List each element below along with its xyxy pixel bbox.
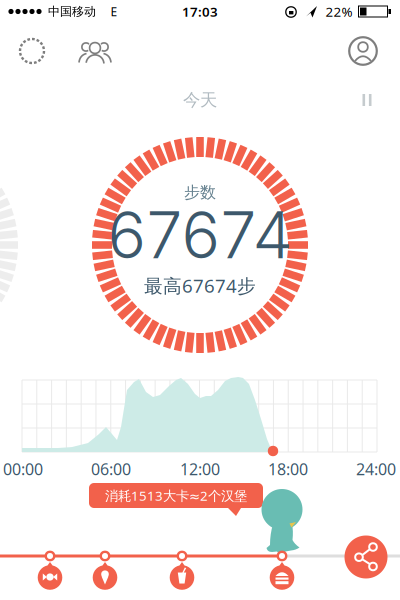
staticText: 消耗1513大卡≈2个汉堡 (105, 487, 247, 504)
button[interactable]: 糖果 (37, 562, 63, 589)
staticText: 00:00 (3, 458, 43, 480)
staticText: 06:00 (91, 458, 131, 480)
button[interactable]: 我的 (348, 36, 378, 66)
staticText: 步数 (184, 183, 216, 202)
button[interactable]: 冰淇淋 (92, 562, 118, 589)
staticText: 最高67674步 (144, 273, 256, 298)
staticText: 24:00 (356, 458, 396, 480)
staticText: 22% (325, 3, 352, 20)
staticText: 中国移动 (48, 4, 96, 19)
button[interactable]: 暂停 (362, 94, 371, 106)
staticText: E (110, 3, 117, 19)
button[interactable]: 饮料 (169, 562, 195, 589)
button[interactable]: 汉堡 (269, 562, 295, 589)
button[interactable]: 分享 (344, 535, 387, 578)
staticText: 12:00 (180, 458, 220, 480)
staticText: 67674 (107, 196, 292, 274)
staticText: 今天 (183, 89, 217, 111)
button[interactable]: 好友 (78, 39, 112, 65)
button[interactable]: 记录 (16, 35, 48, 67)
staticText: 17:03 (182, 3, 218, 20)
staticText: 18:00 (268, 458, 308, 480)
